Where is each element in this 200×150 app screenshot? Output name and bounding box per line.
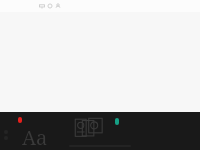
button[interactable]: Cloud status — [39, 3, 45, 9]
button[interactable]: Sync — [47, 3, 53, 9]
button[interactable]: Templates — [74, 117, 106, 139]
button[interactable]: Account — [55, 3, 61, 9]
button[interactable]: Text style — [17, 117, 43, 144]
staticText: Aa — [22, 124, 48, 150]
button[interactable]: Status indicator — [115, 118, 119, 125]
